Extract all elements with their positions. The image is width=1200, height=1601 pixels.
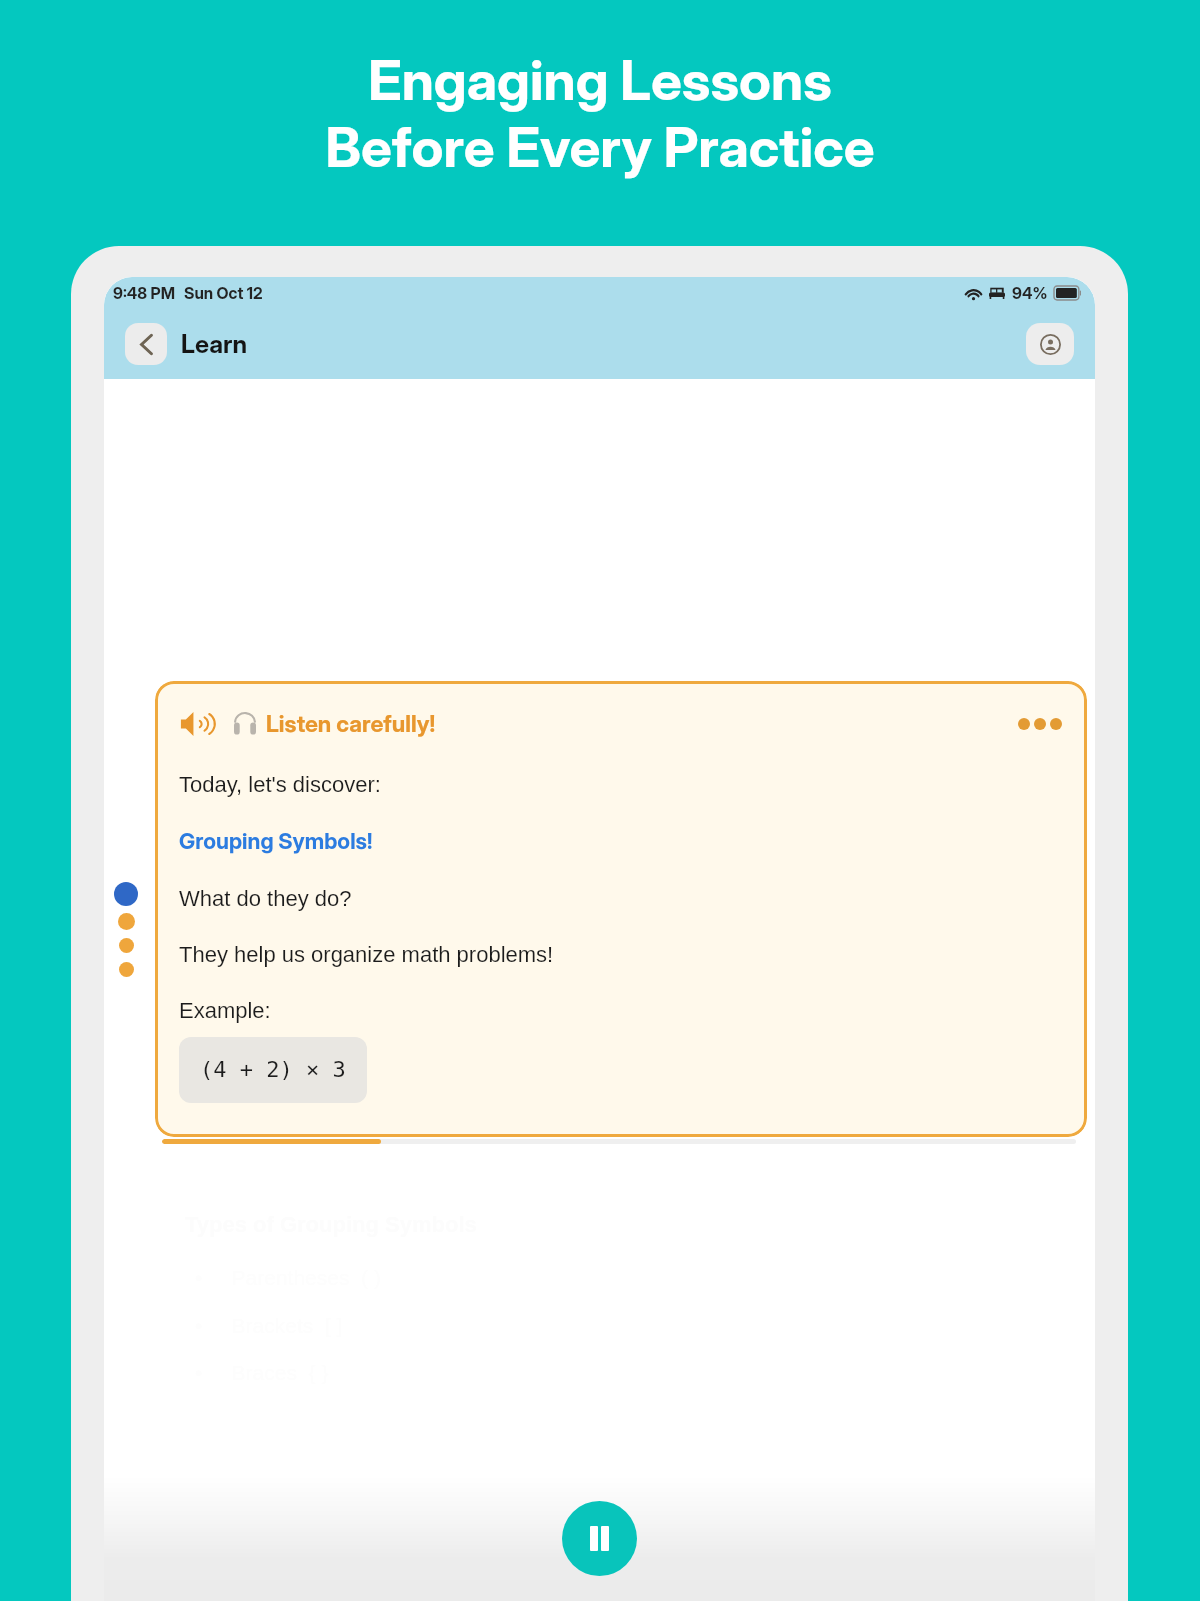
staticText: Engaging Lessons	[368, 47, 832, 114]
staticText: Example:	[179, 998, 271, 1023]
staticText: Before Every Practice	[325, 114, 875, 181]
button[interactable]: Listen carefully!	[155, 681, 1087, 1137]
staticText: Sun Oct 12	[184, 283, 263, 302]
staticText: Learn	[181, 329, 248, 359]
button[interactable]: Pause	[562, 1501, 637, 1576]
button[interactable]: Profile	[1026, 323, 1074, 365]
staticText: 94%	[1012, 283, 1048, 302]
staticText: Listen carefully!	[266, 710, 436, 738]
staticText: 9:48 PM	[113, 283, 175, 302]
staticText: They help us organize math problems!	[179, 942, 554, 967]
staticText: What do they do?	[179, 886, 352, 911]
staticText: Today, let's discover:	[179, 772, 381, 797]
staticText: (4 + 2) × 3	[200, 1057, 346, 1083]
staticText: Grouping Symbols!	[179, 828, 373, 855]
button[interactable]: Back	[125, 323, 167, 365]
button[interactable]: More options	[1012, 710, 1063, 738]
